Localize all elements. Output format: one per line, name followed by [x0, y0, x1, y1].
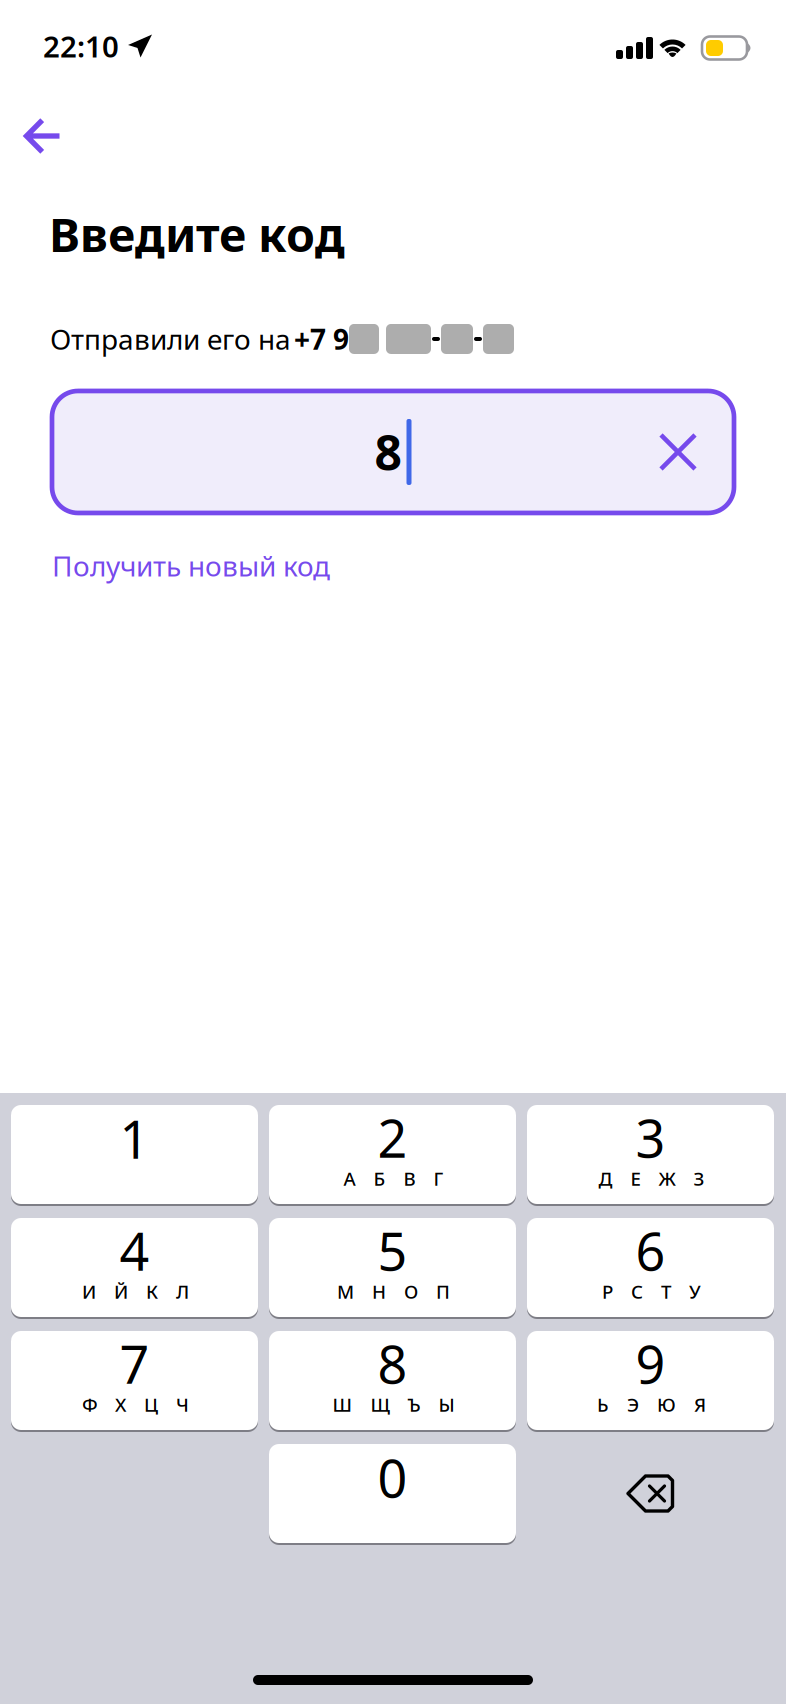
- staticText: 8: [374, 420, 401, 484]
- staticText: ШЩЪЫ: [332, 1392, 454, 1417]
- staticText: 3: [635, 1103, 665, 1172]
- button[interactable]: 5: [269, 1218, 516, 1317]
- button[interactable]: 1: [11, 1105, 258, 1204]
- button[interactable]: Clear: [641, 415, 715, 489]
- staticText: РСТУ: [602, 1279, 701, 1304]
- staticText: 4: [119, 1216, 149, 1285]
- staticText: 6: [635, 1216, 665, 1285]
- staticText: 1: [119, 1104, 149, 1173]
- staticText: 2: [377, 1103, 407, 1172]
- staticText: 9: [635, 1329, 665, 1398]
- staticText: МНОП: [337, 1279, 450, 1304]
- button[interactable]: 6: [527, 1218, 774, 1317]
- button[interactable]: 9: [527, 1331, 774, 1430]
- staticText: Получить новый код: [52, 547, 330, 584]
- staticText: Отправили его на: [50, 320, 291, 358]
- button[interactable]: 2: [269, 1105, 516, 1204]
- button[interactable]: 3: [527, 1105, 774, 1204]
- staticText: 5: [377, 1216, 407, 1285]
- staticText: 8: [377, 1329, 407, 1398]
- button[interactable]: Delete: [527, 1444, 774, 1543]
- staticText: Введите код: [49, 203, 345, 265]
- button[interactable]: 7: [11, 1331, 258, 1430]
- staticText: ФХЦЧ: [82, 1392, 189, 1417]
- button[interactable]: 8: [269, 1331, 516, 1430]
- staticText: 0: [377, 1443, 407, 1512]
- button[interactable]: Получить новый код: [0, 539, 786, 592]
- staticText: ЬЭЮЯ: [597, 1392, 706, 1417]
- staticText: 22:10: [43, 26, 119, 65]
- staticText: ДЕЖЗ: [598, 1166, 704, 1191]
- staticText: ИЙКЛ: [82, 1279, 189, 1304]
- button[interactable]: 0: [269, 1444, 516, 1543]
- staticText: +7 9: [294, 320, 349, 358]
- button[interactable]: Back: [0, 106, 62, 166]
- staticText: 7: [119, 1329, 149, 1398]
- staticText: АБВГ: [343, 1166, 443, 1191]
- button[interactable]: 4: [11, 1218, 258, 1317]
